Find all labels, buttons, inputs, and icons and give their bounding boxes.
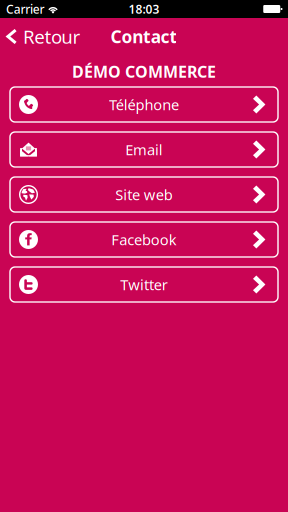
- staticText: Site web: [115, 185, 173, 204]
- staticText: Téléphone: [109, 95, 179, 114]
- staticText: Twitter: [120, 275, 168, 294]
- staticText: Retour: [23, 24, 80, 49]
- staticText: 18:03: [128, 1, 159, 17]
- button[interactable]: Téléphone: [10, 87, 278, 122]
- staticText: DÉMO COMMERCE: [72, 61, 216, 82]
- button[interactable]: Twitter: [10, 267, 278, 302]
- staticText: Email: [125, 140, 163, 159]
- staticText: Carrier: [6, 1, 44, 17]
- staticText: Contact: [111, 25, 177, 48]
- button[interactable]: Site web: [10, 177, 278, 212]
- button[interactable]: Retour: [0, 20, 88, 52]
- button[interactable]: Email: [10, 132, 278, 167]
- button[interactable]: Facebook: [10, 222, 278, 257]
- staticText: Facebook: [111, 230, 177, 249]
